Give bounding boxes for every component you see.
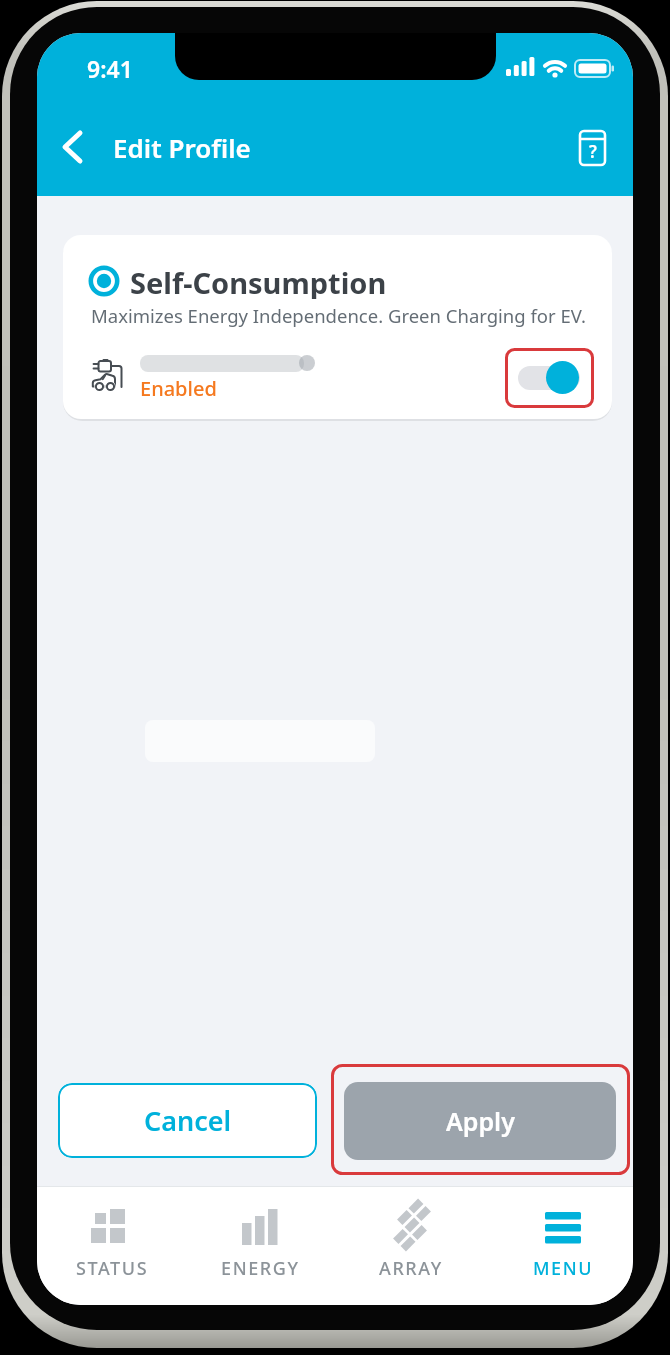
button[interactable]: Cancel: [58, 1083, 317, 1158]
button[interactable]: [47, 123, 95, 171]
staticText: Maximizes Energy Independence. Green Cha…: [91, 303, 586, 328]
staticText: MENU: [533, 1256, 594, 1280]
staticText: Enabled: [140, 375, 217, 401]
button[interactable]: [518, 366, 580, 390]
staticText: Edit Profile: [113, 130, 251, 165]
button[interactable]: STATUS: [57, 1194, 167, 1294]
staticText: ENERGY: [221, 1256, 300, 1280]
staticText: Cancel: [144, 1102, 232, 1139]
button[interactable]: ARRAY: [356, 1194, 466, 1294]
staticText: Self-Consumption: [130, 263, 387, 299]
button[interactable]: Apply: [344, 1082, 616, 1160]
button[interactable]: [88, 265, 120, 297]
button[interactable]: ENERGY: [205, 1194, 315, 1294]
staticText: Apply: [446, 1104, 515, 1138]
staticText: 9:41: [87, 53, 133, 84]
button[interactable]: MENU: [508, 1194, 618, 1294]
button[interactable]: ?: [573, 127, 613, 169]
staticText: ARRAY: [379, 1256, 443, 1280]
staticText: ?: [589, 140, 597, 163]
staticText: STATUS: [76, 1256, 149, 1280]
